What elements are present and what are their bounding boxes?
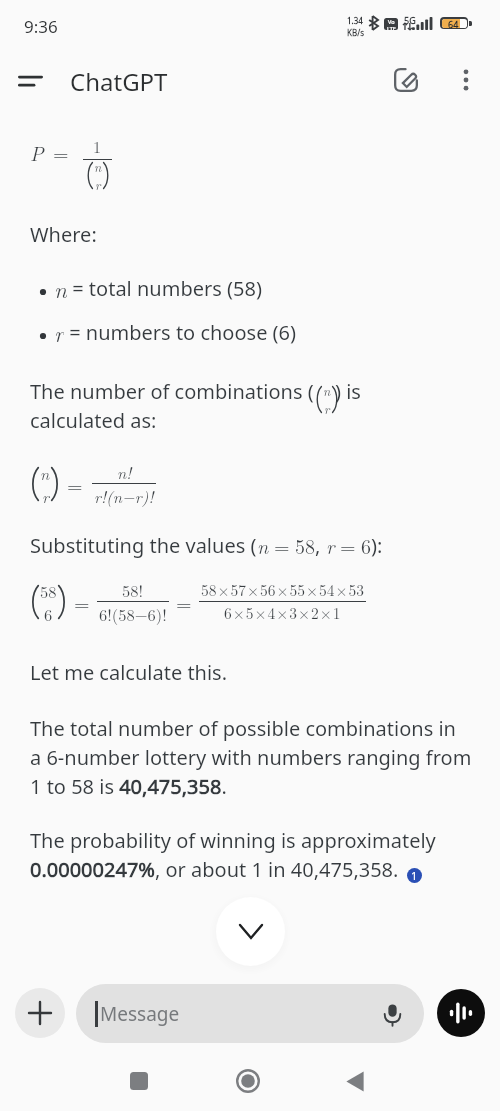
staticText: ): (371, 532, 383, 559)
staticText: 1 to 58 is 40,475,358. (30, 773, 227, 800)
staticText: 6!(58−6)! (99, 602, 167, 625)
staticText: Where: (30, 221, 97, 248)
staticText: Let me calculate this. (30, 659, 228, 686)
staticText: n (40, 461, 50, 484)
staticText: 1 (411, 868, 418, 883)
staticText: 0.00000247%, or about 1 in 40,475,358. (30, 856, 399, 883)
staticText: r (54, 316, 64, 348)
staticText: = (53, 138, 69, 166)
staticText: KB/s (347, 27, 364, 38)
staticText: The probability of winning is approximat… (30, 827, 436, 854)
staticText: = (176, 588, 192, 616)
staticText: 1 (93, 135, 102, 158)
staticText: , (315, 532, 326, 559)
button[interactable]: Message (76, 984, 424, 1043)
staticText: 64 (448, 18, 459, 30)
staticText: Vo (388, 18, 395, 25)
staticText: r (95, 175, 101, 193)
staticText: n (257, 531, 269, 559)
staticText: 58! (122, 578, 144, 601)
staticText: n (94, 157, 102, 175)
staticText: 1.34 (347, 15, 363, 26)
staticText: Substituting the values ( (30, 532, 257, 559)
button[interactable]: Home (224, 1057, 272, 1105)
button[interactable]: Back (331, 1057, 379, 1105)
staticText: ChatGPT (70, 65, 168, 98)
staticText: = (67, 470, 83, 498)
button[interactable]: Recent apps (115, 1057, 163, 1105)
staticText: r (42, 484, 49, 507)
staticText: 58 × 57 × 56 × 55 × 54 × 53 (201, 579, 364, 601)
button[interactable]: Citation 1 (407, 868, 422, 883)
button[interactable]: Add attachment (15, 988, 65, 1038)
staticText: n (323, 381, 331, 399)
staticText: = total numbers (58) (67, 275, 262, 302)
staticText: 6 × 5 × 4 × 3 × 2 × 1 (224, 602, 341, 624)
button[interactable]: Scroll to bottom (216, 897, 285, 966)
staticText: r (326, 531, 335, 559)
button[interactable]: Dictate (378, 1000, 406, 1028)
staticText: LTE (387, 25, 396, 30)
staticText: n (54, 272, 67, 304)
staticText: 9:36 (24, 15, 58, 38)
staticText: The total number of possible combination… (30, 715, 456, 742)
staticText: P (30, 138, 44, 166)
staticText: r (324, 399, 330, 417)
button[interactable]: Menu (8, 59, 52, 103)
button[interactable]: Voice mode (437, 989, 485, 1037)
staticText: = numbers to choose (6) (64, 319, 297, 346)
staticText: 6 (361, 531, 371, 559)
staticText: = (340, 531, 356, 559)
staticText: = (74, 588, 90, 616)
staticText: n! (117, 460, 132, 483)
button[interactable]: New chat (384, 58, 428, 102)
staticText: 6 (44, 602, 53, 625)
staticText: 58 (40, 579, 57, 602)
staticText: a 6-number lottery with numbers ranging … (30, 744, 472, 771)
staticText: calculated as: (30, 407, 157, 434)
button[interactable]: More options (444, 58, 488, 102)
staticText: 58 (295, 531, 315, 559)
staticText: ) is (335, 378, 361, 405)
staticText: The number of combinations ( (30, 378, 314, 405)
staticText: 5G (404, 14, 416, 26)
staticText: = (274, 531, 290, 559)
staticText: r!(n−r)! (94, 484, 154, 507)
staticText: Message (100, 1001, 180, 1027)
